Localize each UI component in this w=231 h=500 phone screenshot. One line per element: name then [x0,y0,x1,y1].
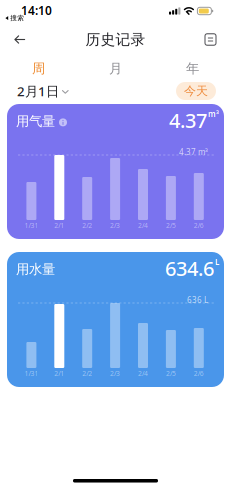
button[interactable]: Back [0,28,25,51]
staticText: L [215,256,219,267]
staticText: 2/2 [82,221,92,230]
staticText: 2/3 [110,369,120,378]
staticText: 4.37 [169,107,207,134]
staticText: 周 [32,60,45,77]
staticText: 2/2 [82,369,92,378]
staticText: 搜索 [10,14,24,22]
staticText: 2/4 [138,221,148,230]
button[interactable]: 月 [77,60,154,77]
staticText: m³ [208,108,219,119]
staticText: 年 [186,60,199,77]
button[interactable]: 年 [154,60,231,77]
staticText: 2/6 [194,221,204,230]
staticText: 用气量 [16,113,55,129]
staticText: 2/3 [110,221,120,230]
staticText: 1/31 [24,221,38,230]
staticText: 用水量 [16,261,55,277]
staticText: 2/1 [54,221,64,230]
staticText: 2/5 [166,369,176,378]
staticText: 今天 [184,84,208,98]
staticText: 636 L [187,294,208,305]
staticText: 2月1日 [17,82,59,100]
staticText: 2/1 [54,369,64,378]
staticText: 1/31 [24,369,38,378]
button[interactable]: Report [205,28,231,51]
staticText: 14:10 [21,2,52,18]
staticText: 2/5 [166,221,176,230]
staticText: 4.37 m³ [179,146,208,157]
button[interactable]: Info [59,118,67,126]
staticText: 月 [109,60,122,77]
button[interactable]: 今天 [176,82,216,100]
staticText: 2/6 [194,369,204,378]
staticText: 2/4 [138,369,148,378]
staticText: 634.6 [165,255,214,282]
button[interactable]: 周 [0,60,77,77]
button[interactable]: 2月1日 [17,82,69,100]
staticText: 历史记录 [85,30,145,48]
